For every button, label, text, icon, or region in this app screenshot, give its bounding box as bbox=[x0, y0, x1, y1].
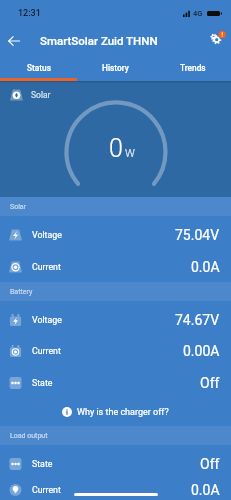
staticText: Voltage bbox=[32, 315, 175, 325]
staticText: 75.04V bbox=[175, 227, 220, 243]
button[interactable]: Settings bbox=[202, 27, 229, 54]
staticText: Current bbox=[32, 346, 183, 356]
staticText: 12:31 bbox=[18, 8, 41, 19]
button[interactable]: State bbox=[0, 367, 231, 398]
button[interactable]: Status bbox=[0, 54, 77, 81]
staticText: 4G bbox=[193, 9, 203, 18]
staticText: State bbox=[32, 378, 200, 388]
button[interactable]: State bbox=[0, 448, 231, 479]
staticText: 0.0A bbox=[191, 482, 220, 498]
button[interactable]: Back bbox=[0, 27, 27, 54]
staticText: Why is the charger off? bbox=[77, 407, 169, 418]
button[interactable]: Why is the charger off? bbox=[0, 398, 231, 426]
button[interactable]: Voltage bbox=[0, 219, 231, 251]
staticText: 74.67V bbox=[175, 312, 220, 328]
staticText: History bbox=[102, 63, 129, 73]
staticText: Load output bbox=[10, 432, 48, 440]
staticText: Battery bbox=[10, 288, 33, 296]
staticText: W bbox=[125, 147, 135, 160]
staticText: 0.00A bbox=[183, 343, 220, 359]
staticText: Current bbox=[32, 262, 191, 272]
button[interactable]: Current bbox=[0, 251, 231, 282]
staticText: Voltage bbox=[32, 230, 175, 240]
staticText: Current bbox=[32, 485, 191, 495]
button[interactable]: Voltage bbox=[0, 304, 231, 335]
button[interactable]: History bbox=[77, 54, 154, 81]
staticText: Off bbox=[200, 456, 220, 472]
button[interactable]: Trends bbox=[154, 54, 231, 81]
staticText: Trends bbox=[180, 63, 206, 73]
staticText: State bbox=[32, 459, 200, 469]
button[interactable]: Current bbox=[0, 479, 231, 500]
staticText: Off bbox=[200, 375, 220, 391]
staticText: Solar bbox=[31, 90, 51, 100]
staticText: Status bbox=[27, 63, 51, 73]
staticText: 0.0A bbox=[191, 259, 220, 275]
staticText: SmartSolar Zuid THNN bbox=[40, 34, 158, 47]
staticText: Solar bbox=[10, 203, 27, 211]
button[interactable]: Current bbox=[0, 335, 231, 367]
staticText: 0 bbox=[109, 134, 123, 163]
